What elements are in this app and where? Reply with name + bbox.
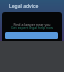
staticText: Legal advice	[9, 3, 39, 10]
staticText: Find a lawyer near you	[3, 22, 61, 27]
staticText: Get expert legal help now	[3, 25, 61, 30]
button[interactable]	[5, 32, 58, 39]
